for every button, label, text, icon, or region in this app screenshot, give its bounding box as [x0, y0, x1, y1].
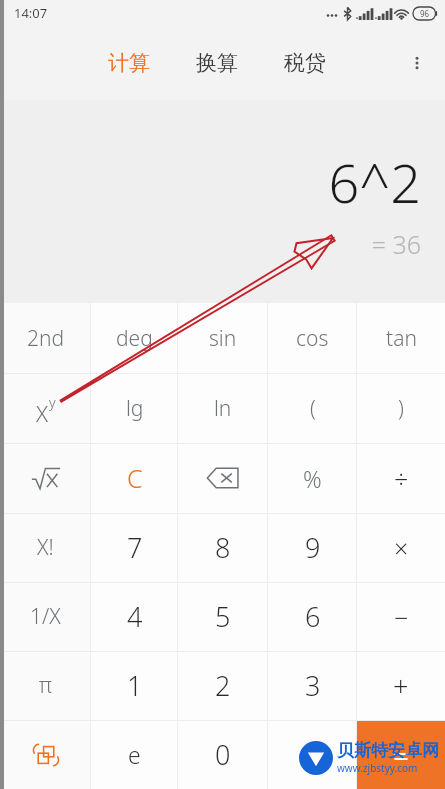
button[interactable]: X to the power of Y [0, 373, 91, 443]
staticText: 5 [215, 598, 231, 635]
staticText: X! [37, 533, 54, 562]
staticText: % [303, 463, 322, 494]
button[interactable]: 税贷 [280, 44, 330, 82]
staticText: ln [214, 394, 232, 423]
button[interactable]: C [91, 443, 178, 513]
button[interactable]: % [268, 443, 357, 513]
staticText: 14:07 [14, 4, 48, 22]
staticText: X [36, 398, 49, 428]
button[interactable]: 2nd [0, 303, 91, 373]
staticText: 8 [215, 529, 231, 566]
button[interactable]: Equals [357, 720, 445, 789]
staticText: deg [116, 324, 153, 353]
button[interactable]: 1/X [0, 582, 91, 651]
staticText: 7 [127, 529, 143, 566]
button[interactable]: 5 [178, 582, 268, 651]
button[interactable]: Switch layout [0, 720, 91, 789]
staticText: cos [296, 324, 329, 353]
button[interactable]: deg [91, 303, 178, 373]
staticText: + [393, 667, 409, 704]
staticText: ( [310, 394, 316, 423]
button[interactable]: 3 [268, 651, 357, 720]
button[interactable]: 2 [178, 651, 268, 720]
button[interactable]: ( [268, 373, 357, 443]
button[interactable]: lg [91, 373, 178, 443]
staticText: − [394, 600, 409, 634]
staticText: 2nd [27, 324, 65, 353]
staticText: tan [386, 324, 417, 353]
button[interactable]: 计算 [104, 44, 154, 82]
button[interactable]: Square root [0, 443, 91, 513]
button[interactable]: sin [178, 303, 268, 373]
button[interactable]: ÷ [357, 443, 445, 513]
staticText: π [39, 671, 52, 700]
staticText: 96 [420, 8, 430, 19]
button[interactable]: . [268, 720, 357, 789]
button[interactable]: 7 [91, 513, 178, 582]
staticText: ÷ [394, 461, 409, 495]
staticText: 1/X [30, 602, 61, 631]
staticText: 4 [127, 598, 143, 635]
button[interactable]: + [357, 651, 445, 720]
button[interactable]: 4 [91, 582, 178, 651]
staticText: www.zjbstyy.com [337, 761, 418, 775]
staticText: = [393, 736, 410, 774]
staticText: = 36 [371, 227, 421, 261]
staticText: 2 [215, 667, 231, 704]
staticText: lg [126, 394, 144, 423]
button[interactable]: π [0, 651, 91, 720]
staticText: 税贷 [284, 50, 326, 76]
staticText: 6 [305, 598, 321, 635]
button[interactable]: 8 [178, 513, 268, 582]
button[interactable]: ln [178, 373, 268, 443]
button[interactable]: cos [268, 303, 357, 373]
button[interactable]: e [91, 720, 178, 789]
staticText: 换算 [196, 50, 238, 76]
staticText: 9 [305, 529, 321, 566]
button[interactable]: More options [395, 41, 439, 85]
staticText: 3 [305, 667, 321, 704]
button[interactable]: ) [357, 373, 445, 443]
button[interactable]: tan [357, 303, 445, 373]
staticText: 0 [215, 736, 231, 773]
staticText: 1 [127, 667, 143, 704]
button[interactable]: 0 [178, 720, 268, 789]
button[interactable]: 6 [268, 582, 357, 651]
staticText: 6^2 [328, 145, 421, 219]
staticText: e [128, 739, 141, 770]
staticText: 计算 [108, 50, 150, 76]
button[interactable]: 9 [268, 513, 357, 582]
button[interactable]: × [357, 513, 445, 582]
staticText: y [49, 393, 56, 412]
staticText: × [394, 531, 409, 565]
staticText: sin [209, 324, 237, 353]
button[interactable]: X! [0, 513, 91, 582]
button[interactable]: Backspace [178, 443, 268, 513]
button[interactable]: − [357, 582, 445, 651]
staticText: . [310, 740, 316, 769]
staticText: C [127, 461, 143, 495]
button[interactable]: 1 [91, 651, 178, 720]
staticText: ) [398, 394, 404, 423]
staticText: 贝斯特安卓网 [337, 740, 439, 761]
button[interactable]: 换算 [192, 44, 242, 82]
